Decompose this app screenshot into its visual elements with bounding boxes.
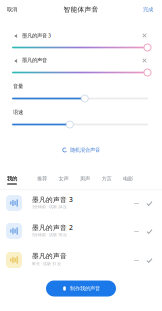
button[interactable]: 随机混合声音 [56,145,106,155]
button[interactable]: 男声 [77,172,93,188]
staticText: 昨天 · 试听 31 次 [32,261,61,266]
staticText: 随机混合声音 [70,147,100,153]
staticText: 制作我的声音 [70,285,100,292]
button[interactable]: 制作我的声音 [46,280,116,296]
staticText: 墨凡的声音 3 [22,32,51,39]
button[interactable]: 我的 [4,172,20,188]
staticText: 电影 [123,175,133,182]
staticText: 3分钟前 · 试听 24 次 [32,204,67,209]
button[interactable]: 完成 [127,2,162,17]
button[interactable]: 电影 [120,172,136,188]
button[interactable]: 女声 [55,172,71,188]
button[interactable]: 取消 [0,2,33,17]
button[interactable]: 移除 [140,31,149,40]
staticText: 语速 [13,109,23,116]
button[interactable]: 推荐 [34,172,50,188]
staticText: 墨凡的声音 2 [32,223,73,232]
staticText: 我的 [7,175,17,182]
button[interactable]: 移除 [140,56,149,65]
staticText: 墨凡的声音 [32,252,67,260]
staticText: 女声 [58,175,68,182]
staticText: 完成 [143,6,153,13]
staticText: 墨凡的声音 3 [32,195,73,204]
staticText: 推荐 [37,175,47,182]
staticText: 墨凡的声音 [22,57,47,64]
staticText: 音量 [13,83,23,90]
staticText: 5分钟前 · 试听 18 次 [32,232,67,237]
staticText: 男声 [80,175,90,182]
button[interactable]: 方言 [98,172,114,188]
staticText: 智能体声音 [63,5,98,14]
staticText: 取消 [7,6,17,13]
button[interactable]: 墨凡的声音 3 [0,191,162,219]
button[interactable]: 墨凡的声音 [0,248,162,276]
staticText: 方言 [101,175,111,182]
button[interactable]: 墨凡的声音 2 [0,219,162,247]
